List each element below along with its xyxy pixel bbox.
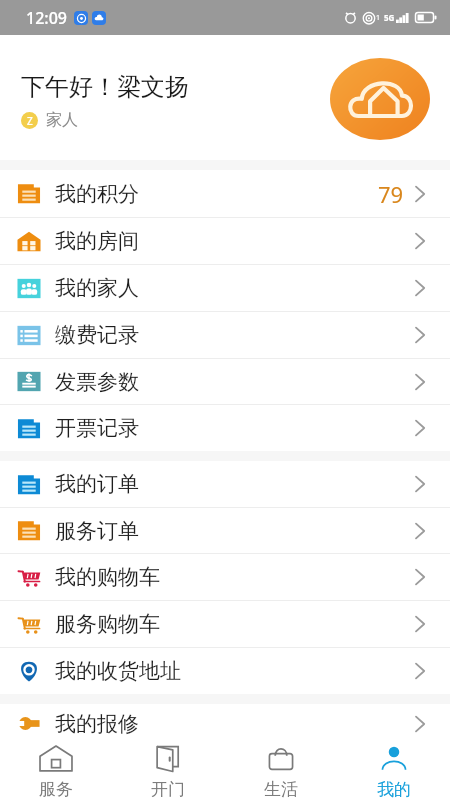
staticText: 缴费记录 xyxy=(55,322,139,348)
button[interactable]: 开票记录 xyxy=(0,405,450,451)
button[interactable]: 我的房间 xyxy=(0,218,450,264)
button[interactable]: 我的 xyxy=(337,743,450,800)
staticText: 发票参数 xyxy=(55,369,139,395)
staticText: 79 xyxy=(378,179,404,209)
staticText: 我的积分 xyxy=(55,181,139,207)
button[interactable]: 缴费记录 xyxy=(0,312,450,358)
button[interactable]: 我的报修 xyxy=(0,704,450,743)
staticText: 我的房间 xyxy=(55,228,139,254)
staticText: 12:09 xyxy=(26,7,67,29)
button[interactable]: 服务 xyxy=(0,743,112,800)
staticText: 家人 xyxy=(46,110,78,130)
button[interactable]: 服务订单 xyxy=(0,508,450,553)
button[interactable]: 我的收货地址 xyxy=(0,648,450,694)
staticText: 开门 xyxy=(151,779,185,800)
button[interactable]: Profile avatar xyxy=(330,58,430,140)
staticText: Z xyxy=(27,114,33,128)
button[interactable]: 我的订单 xyxy=(0,461,450,507)
staticText: 1 xyxy=(376,13,381,23)
staticText: 我的家人 xyxy=(55,275,139,301)
staticText: 下午好！梁文扬 xyxy=(21,72,189,102)
staticText: 我的报修 xyxy=(55,711,139,737)
staticText: 开票记录 xyxy=(55,415,139,441)
staticText: 生活 xyxy=(264,779,298,800)
staticText: 我的购物车 xyxy=(55,564,160,590)
staticText: 服务购物车 xyxy=(55,611,160,637)
button[interactable]: 生活 xyxy=(224,743,337,800)
staticText: 我的 xyxy=(377,779,411,800)
button[interactable]: 开门 xyxy=(112,743,224,800)
staticText: 我的订单 xyxy=(55,471,139,497)
button[interactable]: 服务购物车 xyxy=(0,601,450,647)
button[interactable]: 发票参数 xyxy=(0,359,450,404)
staticText: 服务订单 xyxy=(55,518,139,544)
button[interactable]: 我的家人 xyxy=(0,265,450,311)
button[interactable]: 我的购物车 xyxy=(0,554,450,600)
staticText: 我的收货地址 xyxy=(55,658,181,684)
staticText: 服务 xyxy=(39,779,73,800)
staticText: 5G xyxy=(384,12,395,23)
button[interactable]: 我的积分 xyxy=(0,170,450,217)
